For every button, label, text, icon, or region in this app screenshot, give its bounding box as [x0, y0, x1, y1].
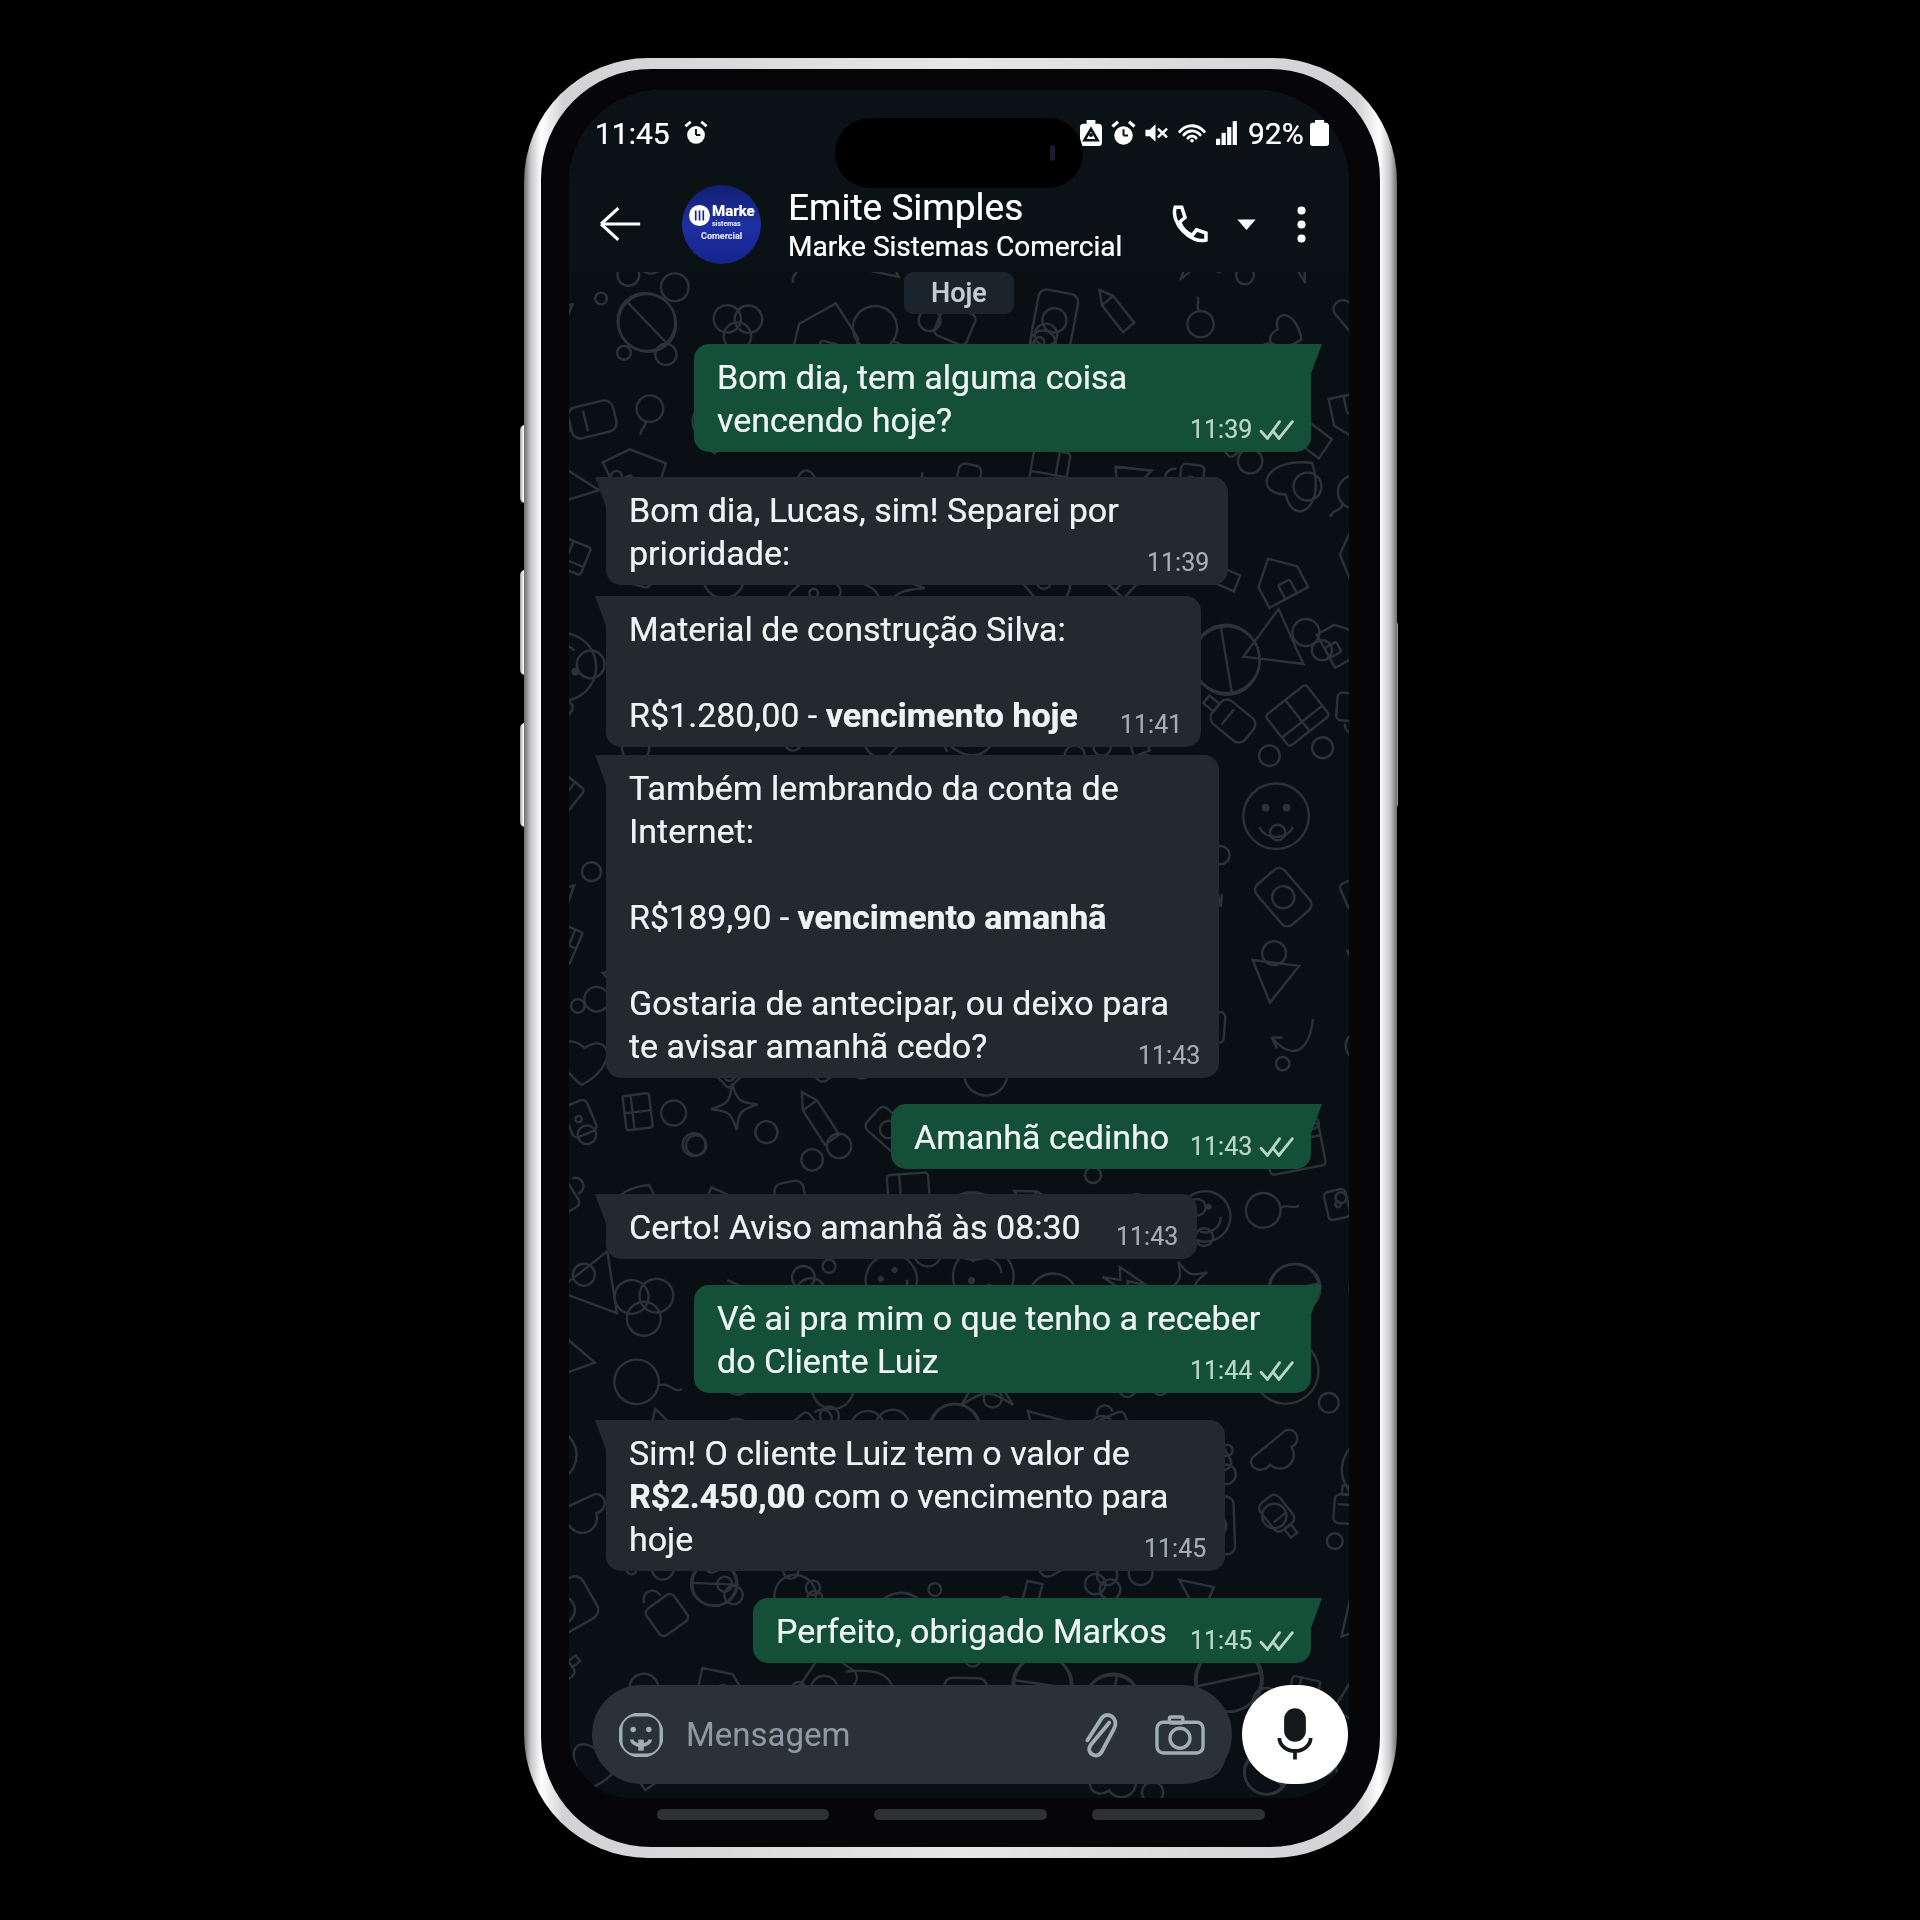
- button[interactable]: Bom dia, Lucas, sim! Separei por priorid…: [606, 477, 1228, 585]
- button[interactable]: Bom dia, tem alguma coisa vencendo hoje?: [694, 344, 1311, 452]
- button[interactable]: Back: [589, 193, 651, 255]
- button[interactable]: Emoji: [618, 1712, 664, 1758]
- button[interactable]: Perfeito, obrigado Markos: [753, 1598, 1311, 1663]
- staticText: 11:39: [1190, 415, 1253, 444]
- staticText: Vê ai pra mim o que tenho a receber do C…: [717, 1296, 1261, 1382]
- staticText: Mensagem: [686, 1715, 851, 1754]
- staticText: Emite Simples: [788, 186, 1024, 229]
- button[interactable]: Emoji: [592, 1685, 1232, 1784]
- staticText: 11:43: [1116, 1222, 1179, 1251]
- staticText: Hoje: [931, 277, 987, 309]
- staticText: 11:44: [1190, 1356, 1253, 1385]
- button[interactable]: Sim! O cliente Luiz tem o valor de R$2.4…: [606, 1420, 1225, 1571]
- staticText: Bom dia, Lucas, sim! Separei por priorid…: [629, 488, 1119, 574]
- button[interactable]: Hoje: [904, 272, 1014, 314]
- button[interactable]: Profile photo: [682, 185, 761, 264]
- staticText: Perfeito, obrigado Markos: [776, 1609, 1167, 1652]
- button[interactable]: Emite Simples: [788, 186, 1157, 263]
- button[interactable]: Call: [1157, 194, 1217, 254]
- staticText: Material de construção Silva: R$1.280,00…: [629, 607, 1078, 736]
- staticText: 11:43: [1190, 1132, 1253, 1161]
- staticText: Marke Sistemas Comercial: [788, 230, 1123, 263]
- staticText: 92%: [1248, 116, 1304, 151]
- button[interactable]: Material de construção Silva: R$1.280,00…: [606, 596, 1201, 747]
- button[interactable]: Certo! Aviso amanhã às 08:30: [606, 1194, 1197, 1259]
- button[interactable]: More options: [1275, 198, 1327, 250]
- button[interactable]: Também lembrando da conta de Internet: R…: [606, 755, 1219, 1078]
- button[interactable]: Attach: [1082, 1713, 1116, 1757]
- staticText: 11:45: [1190, 1626, 1253, 1655]
- staticText: 11:43: [1138, 1041, 1201, 1070]
- staticText: Bom dia, tem alguma coisa vencendo hoje?: [717, 355, 1128, 441]
- button[interactable]: Voice message: [1242, 1685, 1348, 1784]
- staticText: 11:39: [1147, 548, 1210, 577]
- staticText: 11:45: [595, 116, 670, 151]
- staticText: Certo! Aviso amanhã às 08:30: [629, 1205, 1081, 1248]
- button[interactable]: Camera: [1156, 1715, 1204, 1755]
- staticText: 11:41: [1120, 710, 1183, 739]
- button[interactable]: Expand: [1217, 195, 1275, 253]
- staticText: Sim! O cliente Luiz tem o valor de R$2.4…: [629, 1431, 1169, 1560]
- staticText: Marke: [712, 202, 755, 220]
- button[interactable]: Vê ai pra mim o que tenho a receber do C…: [694, 1285, 1311, 1393]
- staticText: Comercial: [701, 231, 743, 242]
- staticText: Amanhã cedinho: [914, 1115, 1170, 1158]
- button[interactable]: Amanhã cedinho: [891, 1104, 1311, 1169]
- staticText: 11:45: [1144, 1534, 1207, 1563]
- staticText: Também lembrando da conta de Internet: R…: [629, 766, 1170, 1067]
- staticText: sistemas: [712, 220, 741, 228]
